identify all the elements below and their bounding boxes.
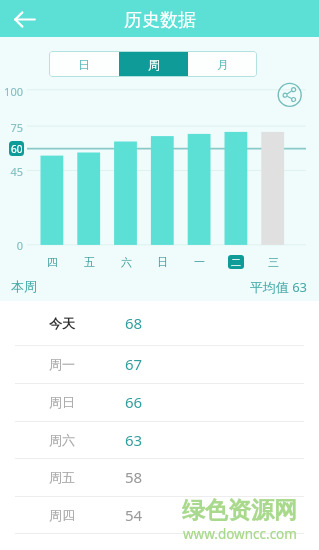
staticText: 66 xyxy=(125,392,143,412)
button[interactable]: 月 xyxy=(188,51,257,77)
staticText: 平均值 63 xyxy=(249,278,307,296)
staticText: 75 xyxy=(10,120,23,135)
staticText: 月 xyxy=(217,57,229,72)
button[interactable]: 今天 xyxy=(0,301,319,345)
button[interactable]: 周五 xyxy=(0,458,319,496)
staticText: 周一 xyxy=(49,356,75,372)
button[interactable]: 周 xyxy=(119,51,188,77)
staticText: 0 xyxy=(16,238,23,253)
staticText: 67 xyxy=(125,354,143,374)
staticText: 周六 xyxy=(49,432,75,448)
button[interactable]: Share xyxy=(275,80,305,110)
staticText: 周五 xyxy=(49,469,75,485)
button[interactable]: 周六 xyxy=(0,421,319,459)
staticText: 本周 xyxy=(11,278,37,294)
staticText: 四 xyxy=(47,255,58,269)
staticText: 今天 xyxy=(49,315,75,331)
staticText: 周日 xyxy=(49,394,75,410)
staticText: 日 xyxy=(78,57,90,72)
staticText: 58 xyxy=(125,467,143,487)
button[interactable]: 周四 xyxy=(0,496,319,534)
staticText: 60 xyxy=(11,142,23,156)
staticText: 绿色资源网 xyxy=(182,496,297,525)
button[interactable]: Back xyxy=(5,3,45,35)
staticText: 一 xyxy=(194,255,205,269)
button[interactable]: 日 xyxy=(49,51,119,77)
staticText: 100 xyxy=(4,84,23,99)
staticText: www.downcc.com xyxy=(183,525,297,543)
staticText: 周 xyxy=(148,57,160,72)
button[interactable]: 二 xyxy=(228,255,244,269)
staticText: 五 xyxy=(84,255,95,269)
button[interactable]: 周日 xyxy=(0,383,319,421)
staticText: 二 xyxy=(231,256,241,269)
staticText: 68 xyxy=(125,313,143,333)
staticText: 63 xyxy=(125,430,143,450)
staticText: 54 xyxy=(125,505,143,525)
staticText: 周四 xyxy=(49,507,75,523)
staticText: 历史数据 xyxy=(124,9,196,32)
staticText: 六 xyxy=(121,255,132,269)
staticText: 日 xyxy=(157,255,168,269)
staticText: 45 xyxy=(10,164,23,179)
staticText: 三 xyxy=(268,255,279,269)
button[interactable]: 周一 xyxy=(0,345,319,383)
